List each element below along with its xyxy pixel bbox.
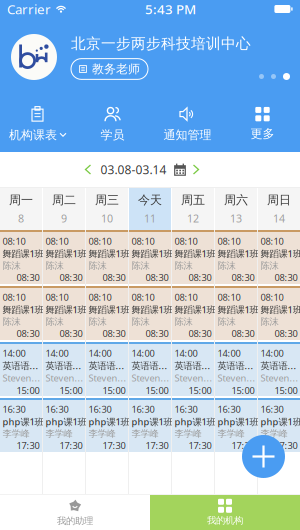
button[interactable]: 08:10 — [258, 230, 300, 284]
staticText: 舞蹈课1班 — [174, 247, 215, 260]
staticText: 15:00 — [59, 384, 82, 397]
staticText: 李学峰 — [2, 428, 29, 439]
button[interactable]: 机构课表 — [0, 96, 75, 152]
staticText: 周六 — [224, 192, 248, 207]
button[interactable]: 14:00 — [0, 342, 42, 396]
staticText: 陈沫 — [2, 260, 20, 271]
staticText: php课1班 — [217, 415, 258, 428]
staticText: 李学峰 — [217, 428, 244, 439]
button[interactable]: Previous week — [80, 159, 95, 180]
button[interactable]: 16:30 — [0, 398, 42, 452]
staticText: 英语语... — [131, 359, 167, 372]
button[interactable]: 08:10 — [86, 286, 128, 340]
button[interactable]: 周二 — [43, 188, 85, 230]
button[interactable]: 08:10 — [172, 286, 214, 340]
staticText: 14:00 — [217, 347, 240, 359]
staticText: 舞蹈课1班 — [88, 303, 129, 316]
button[interactable]: 教务老师 — [71, 59, 148, 79]
button[interactable]: 今天 — [129, 188, 171, 230]
staticText: Steven... — [88, 372, 126, 384]
staticText: 舞蹈课1班 — [45, 247, 86, 260]
staticText: 英语语... — [45, 359, 81, 372]
staticText: 周日 — [267, 192, 291, 207]
staticText: 英语语... — [2, 359, 38, 372]
staticText: 李学峰 — [88, 428, 115, 439]
staticText: 陈沫 — [174, 316, 192, 327]
staticText: 08:10 — [260, 235, 283, 247]
button[interactable]: 08:10 — [0, 286, 42, 340]
button[interactable]: 14:00 — [258, 342, 300, 396]
staticText: 周五 — [181, 192, 205, 207]
staticText: 15:00 — [188, 384, 211, 397]
button[interactable]: 08:10 — [258, 286, 300, 340]
staticText: 陈沫 — [174, 260, 192, 271]
button[interactable]: 周日 — [258, 188, 300, 230]
staticText: 陈沫 — [131, 260, 149, 271]
staticText: 15:00 — [274, 384, 297, 397]
staticText: php课1班 — [174, 415, 215, 428]
staticText: php课1班 — [2, 415, 43, 428]
staticText: 陈沫 — [217, 316, 235, 327]
button[interactable]: 16:30 — [43, 398, 85, 452]
staticText: php课1班 — [260, 415, 300, 428]
button[interactable]: 更多 — [225, 96, 300, 152]
staticText: 英语语... — [174, 359, 210, 372]
button[interactable]: 周五 — [172, 188, 214, 230]
staticText: 舞蹈课1班 — [88, 247, 129, 260]
button[interactable]: 我的助理 — [0, 495, 150, 530]
button[interactable]: Pick date — [171, 158, 188, 181]
button[interactable]: 14:00 — [172, 342, 214, 396]
button[interactable]: Next week — [188, 159, 203, 180]
button[interactable]: 08:10 — [43, 230, 85, 284]
button[interactable]: 周三 — [86, 188, 128, 230]
staticText: 14:00 — [2, 347, 25, 359]
staticText: 08:30 — [59, 271, 82, 284]
button[interactable]: 08:10 — [0, 230, 42, 284]
staticText: 08:30 — [145, 271, 168, 284]
staticText: 08:10 — [174, 291, 197, 303]
staticText: 舞蹈课1班 — [260, 303, 300, 316]
button[interactable]: 14:00 — [86, 342, 128, 396]
staticText: 03.08-03.14 — [100, 161, 166, 177]
staticText: 08:30 — [145, 327, 168, 340]
staticText: 08:30 — [59, 327, 82, 340]
button[interactable]: 16:30 — [129, 398, 171, 452]
button[interactable]: 08:10 — [129, 286, 171, 340]
staticText: 08:30 — [188, 327, 211, 340]
staticText: 10 — [101, 211, 113, 225]
button[interactable]: 08:10 — [86, 230, 128, 284]
button[interactable]: 16:30 — [172, 398, 214, 452]
staticText: 17:30 — [102, 439, 125, 452]
staticText: 陈沫 — [131, 316, 149, 327]
staticText: 5:43 PM — [145, 0, 196, 18]
button[interactable]: 通知管理 — [150, 96, 225, 152]
button[interactable]: 14:00 — [129, 342, 171, 396]
staticText: 15:00 — [102, 384, 125, 397]
staticText: 16:30 — [174, 403, 197, 415]
button[interactable]: 学员 — [75, 96, 150, 152]
staticText: Carrier — [7, 0, 51, 18]
staticText: 9 — [61, 211, 67, 225]
button[interactable]: 16:30 — [86, 398, 128, 452]
staticText: 08:30 — [274, 327, 297, 340]
button[interactable]: 16:30 — [258, 398, 300, 452]
staticText: 陈沫 — [88, 316, 106, 327]
button[interactable]: 周六 — [215, 188, 257, 230]
button[interactable]: 14:00 — [43, 342, 85, 396]
staticText: 17:30 — [188, 439, 211, 452]
button[interactable]: Add — [242, 435, 285, 478]
staticText: Steven... — [260, 372, 298, 384]
staticText: 15:00 — [145, 384, 168, 397]
button[interactable]: 08:10 — [129, 230, 171, 284]
button[interactable]: 我的机构 — [150, 495, 300, 530]
button[interactable]: 08:10 — [215, 230, 257, 284]
staticText: Steven... — [217, 372, 255, 384]
button[interactable]: 08:10 — [172, 230, 214, 284]
button[interactable]: 周一 — [0, 188, 42, 230]
button[interactable]: 16:30 — [215, 398, 257, 452]
button[interactable]: 08:10 — [215, 286, 257, 340]
staticText: 14:00 — [131, 347, 154, 359]
staticText: 李学峰 — [174, 428, 201, 439]
button[interactable]: 08:10 — [43, 286, 85, 340]
button[interactable]: 14:00 — [215, 342, 257, 396]
